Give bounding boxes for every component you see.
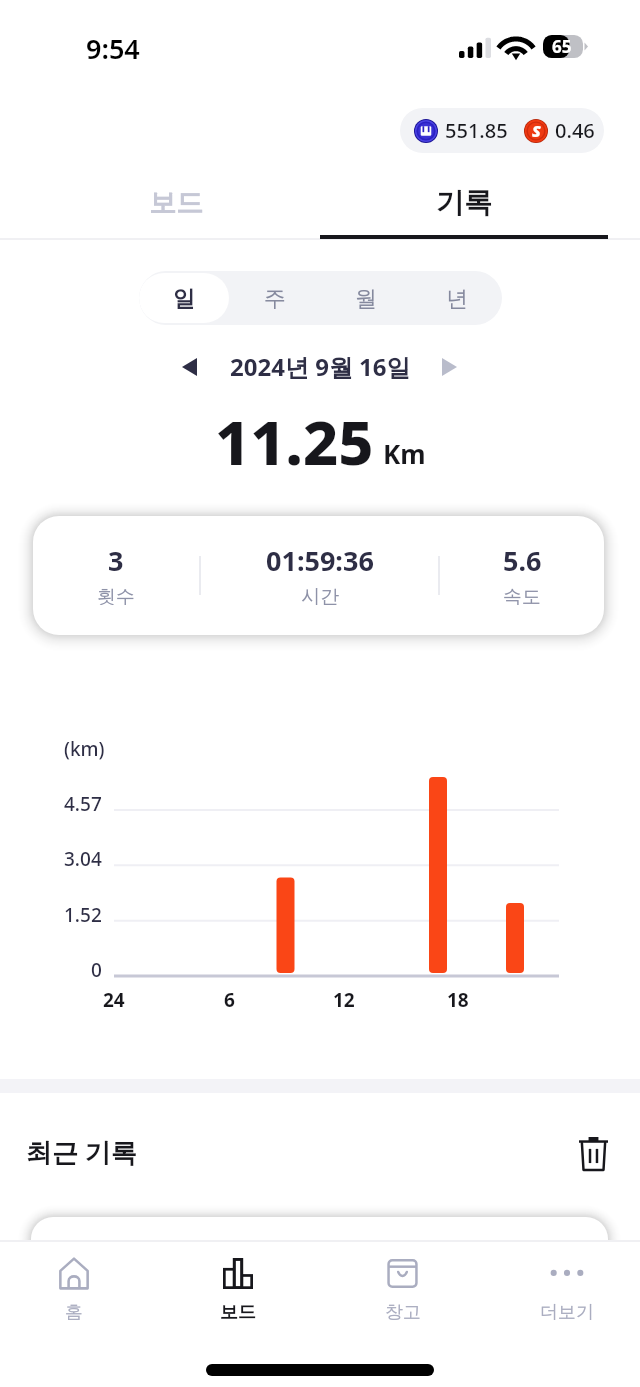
staticText: 3.04 (64, 846, 102, 872)
staticText: 65 (552, 35, 572, 58)
button[interactable]: Previous day (167, 345, 211, 389)
staticText: 일 (173, 285, 195, 313)
staticText: 월 (355, 285, 377, 313)
staticText: 0.46 (555, 117, 595, 144)
staticText: 01:59:36 (266, 542, 374, 579)
button[interactable]: 월 (320, 271, 411, 325)
staticText: 6 (224, 987, 235, 1013)
staticText: 주 (264, 285, 286, 313)
staticText: 더보기 (540, 1301, 594, 1324)
button[interactable]: 주 (229, 271, 320, 325)
staticText: 창고 (385, 1301, 421, 1324)
button[interactable]: 기록 (320, 170, 608, 239)
button[interactable]: 홈 (30, 1240, 117, 1340)
staticText: 11.25 (215, 400, 374, 480)
button[interactable]: 보드 (32, 170, 320, 239)
button[interactable]: Next day (427, 345, 471, 389)
staticText: S (532, 120, 541, 142)
button[interactable]: 551.85 (400, 108, 604, 153)
staticText: 9:54 (86, 30, 140, 67)
staticText: 2024년 9월 16일 (230, 350, 411, 383)
button[interactable]: 창고 (359, 1240, 446, 1340)
staticText: 12 (333, 987, 355, 1013)
button[interactable]: 더보기 (523, 1240, 610, 1340)
staticText: 551.85 (445, 117, 508, 144)
staticText: 보드 (220, 1301, 256, 1324)
staticText: 3 (108, 542, 124, 579)
staticText: 0 (91, 957, 102, 983)
staticText: 속도 (503, 585, 541, 609)
staticText: 년 (446, 285, 468, 313)
staticText: 시간 (301, 585, 339, 609)
staticText: 5.6 (503, 542, 542, 579)
staticText: 홈 (65, 1301, 83, 1324)
button[interactable]: Delete records (568, 1128, 618, 1178)
staticText: 횟수 (97, 585, 135, 609)
button[interactable]: 일 (139, 271, 229, 325)
staticText: 1.52 (64, 902, 102, 928)
staticText: Km (383, 436, 426, 471)
staticText: 기록 (436, 185, 492, 220)
staticText: 최근 기록 (26, 1134, 137, 1170)
staticText: 4.57 (64, 791, 102, 817)
button[interactable]: 년 (411, 271, 502, 325)
button[interactable]: 보드 (194, 1240, 281, 1340)
staticText: 보드 (149, 186, 203, 220)
staticText: (km) (64, 736, 105, 762)
staticText: 18 (447, 987, 469, 1013)
button[interactable] (31, 1217, 608, 1277)
staticText: 24 (103, 987, 125, 1013)
